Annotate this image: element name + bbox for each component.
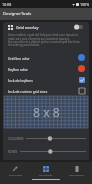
staticText: Grid overlay [16,25,39,30]
staticText: Mock Overlay [69,174,84,177]
staticText: Keyline color [8,67,28,71]
staticText: ROWS [8,150,18,154]
staticText: Grid Overlay [39,174,53,177]
button[interactable]: Grid line color [3,52,89,63]
button[interactable]: COLUMNS [26,135,86,142]
button[interactable]: Grid Overlay [30,162,61,179]
button[interactable]: Keyline color [3,63,89,74]
staticText: DesignerTools [3,11,32,17]
staticText: 8 x 8 [33,104,60,121]
staticText: Grid line color [8,56,30,60]
button[interactable]: Include keylines [3,74,89,85]
staticText: Include keylines [8,78,33,82]
button[interactable]: Grid overlay [3,22,89,32]
staticText: Color Picker [9,174,22,177]
staticText: 100% [80,2,90,7]
staticText: Once enabled, a grid will help you check… [8,33,80,46]
button[interactable]: ROWS [20,148,86,155]
staticText: COLUMNS [8,137,24,141]
staticText: 10:08 [2,2,12,7]
button[interactable]: Mock Overlay [61,162,92,179]
staticText: Include custom grid sizes [8,89,48,93]
button[interactable]: Include custom grid sizes [3,85,89,96]
button[interactable]: Color Picker [0,162,30,179]
button[interactable]: Toggle grid overlay [72,22,86,32]
